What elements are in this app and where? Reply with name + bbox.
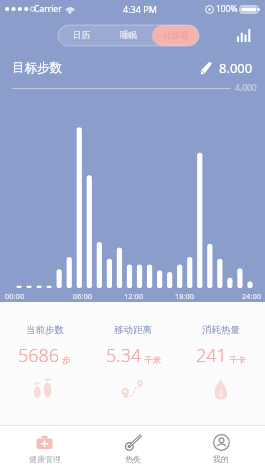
staticText: 日历 bbox=[73, 30, 90, 41]
staticText: 100% bbox=[216, 3, 238, 15]
button[interactable]: 健康管理 bbox=[0, 426, 89, 471]
staticText: 06:00 bbox=[57, 291, 108, 301]
button[interactable]: 计步器 bbox=[152, 25, 199, 46]
button[interactable]: 热灸 bbox=[89, 426, 177, 471]
button[interactable]: Edit goal bbox=[197, 59, 215, 77]
staticText: 消耗热量 bbox=[202, 324, 240, 336]
staticText: 我的 bbox=[213, 454, 229, 464]
button[interactable]: Statistics bbox=[233, 24, 255, 46]
staticText: 移动距离 bbox=[114, 324, 152, 336]
staticText: 千米 bbox=[144, 355, 161, 366]
staticText: 热灸 bbox=[125, 454, 141, 464]
staticText: Carrier bbox=[34, 3, 62, 15]
staticText: 睡眠 bbox=[120, 30, 137, 41]
button[interactable]: 消耗热量 bbox=[177, 324, 265, 403]
staticText: 千卡 bbox=[229, 355, 246, 366]
staticText: 步 bbox=[62, 355, 71, 366]
staticText: 8.000 bbox=[219, 59, 253, 77]
staticText: 健康管理 bbox=[29, 454, 61, 464]
staticText: 4:34 PM bbox=[123, 3, 157, 15]
button[interactable]: 当前步数 bbox=[0, 324, 89, 403]
staticText: 12:00 bbox=[108, 291, 159, 301]
button[interactable]: 睡眠 bbox=[105, 25, 152, 46]
staticText: 计步器 bbox=[163, 30, 189, 41]
staticText: 目标步数 bbox=[12, 60, 62, 76]
button[interactable]: 我的 bbox=[177, 426, 265, 471]
staticText: 24:00 bbox=[210, 291, 261, 301]
staticText: 00:00 bbox=[5, 291, 57, 301]
staticText: 当前步数 bbox=[26, 324, 64, 336]
staticText: 241 bbox=[196, 343, 227, 368]
staticText: 5.34 bbox=[106, 343, 142, 368]
staticText: 5686 bbox=[18, 343, 60, 368]
button[interactable]: 日历 bbox=[58, 25, 105, 46]
staticText: 18:00 bbox=[159, 291, 210, 301]
staticText: 4.000 bbox=[235, 82, 257, 94]
button[interactable]: 移动距离 bbox=[89, 324, 177, 403]
